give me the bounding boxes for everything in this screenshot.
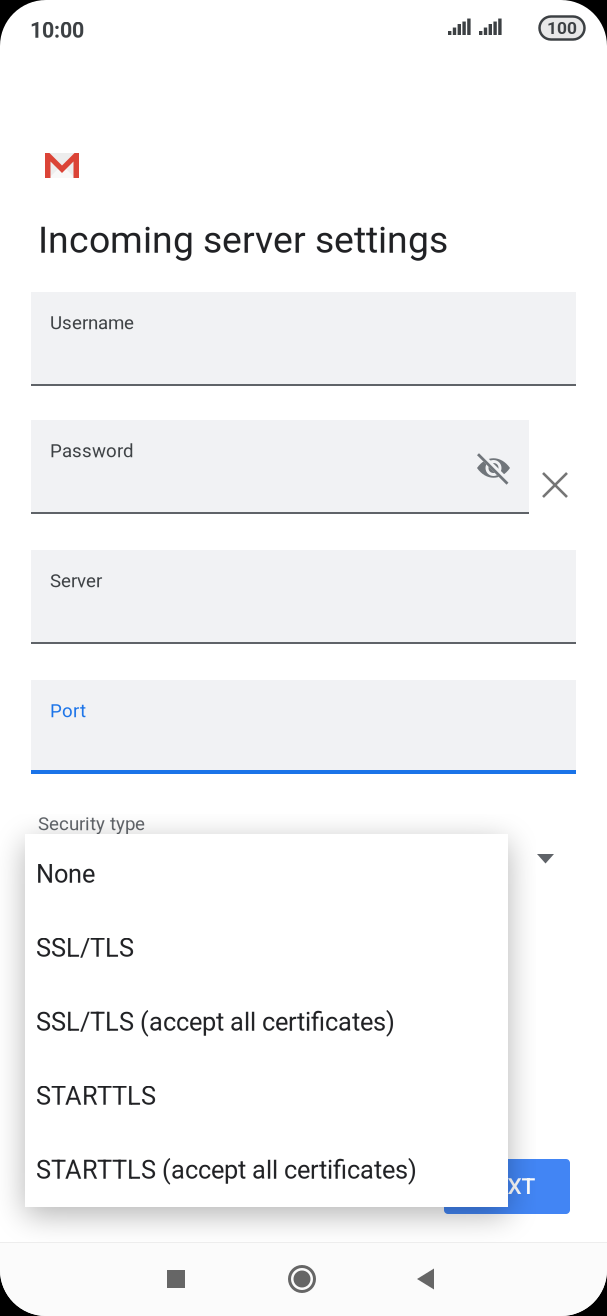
staticText: SSL/TLS (accept all certificates) [36, 1007, 395, 1037]
button[interactable]: Recent apps [152, 1255, 200, 1303]
button[interactable]: Password [31, 420, 529, 514]
staticText: STARTTLS [36, 1081, 156, 1111]
button[interactable]: SSL/TLS [25, 908, 508, 982]
button[interactable]: Username [31, 292, 576, 386]
staticText: STARTTLS (accept all certificates) [36, 1155, 417, 1185]
button[interactable]: Server [31, 550, 576, 644]
staticText: Security type [38, 813, 145, 835]
staticText: None [36, 859, 95, 889]
button[interactable]: Home [278, 1255, 326, 1303]
button[interactable]: SSL/TLS (accept all certificates) [25, 982, 508, 1056]
button[interactable]: NEXT [444, 1159, 570, 1214]
button[interactable]: Back [402, 1255, 450, 1303]
staticText: 100 [547, 18, 577, 38]
staticText: 10:00 [30, 18, 84, 43]
staticText: Password [50, 440, 134, 462]
staticText: Username [50, 312, 134, 334]
button[interactable]: STARTTLS [25, 1056, 508, 1130]
button[interactable]: None [25, 834, 508, 908]
staticText: Port [50, 700, 86, 722]
button[interactable]: Show password [477, 452, 511, 486]
staticText: SSL/TLS [36, 933, 134, 963]
button[interactable]: Port [31, 680, 576, 774]
staticText: Incoming server settings [38, 218, 448, 262]
staticText: Server [50, 570, 102, 592]
staticText: NEXT [478, 1173, 535, 1200]
button[interactable]: Clear [541, 471, 569, 499]
button[interactable]: STARTTLS (accept all certificates) [25, 1130, 508, 1204]
